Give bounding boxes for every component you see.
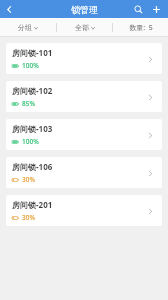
button[interactable]: 房间锁-103	[6, 119, 162, 150]
staticText: 锁管理	[71, 4, 98, 15]
staticText: 房间锁-106	[12, 161, 53, 172]
button[interactable]: 全部	[57, 18, 112, 37]
staticText: 100%	[22, 61, 39, 70]
staticText: 全部	[75, 23, 89, 32]
button[interactable]: Add	[147, 0, 165, 18]
staticText: 分组	[18, 23, 32, 32]
staticText: 房间锁-103	[12, 123, 53, 134]
staticText: 30%	[22, 213, 35, 222]
button[interactable]: 房间锁-106	[6, 157, 162, 188]
button[interactable]: Back	[0, 0, 18, 18]
staticText: 30%	[22, 175, 35, 184]
button[interactable]: 房间锁-201	[6, 195, 162, 226]
staticText: 85%	[22, 99, 35, 108]
button[interactable]: 房间锁-102	[6, 81, 162, 112]
staticText: 房间锁-101	[12, 47, 53, 58]
staticText: 房间锁-201	[12, 199, 53, 210]
staticText: 数量: 5	[129, 23, 153, 33]
staticText: 100%	[22, 137, 39, 146]
button[interactable]: 房间锁-101	[6, 43, 162, 74]
button[interactable]: 分组	[0, 18, 56, 37]
button[interactable]: Search	[129, 0, 147, 18]
staticText: 房间锁-102	[12, 85, 53, 96]
